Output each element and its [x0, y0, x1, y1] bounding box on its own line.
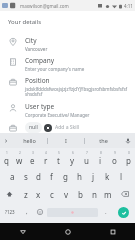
- staticText: v: [64, 189, 69, 200]
- button[interactable]: null: [0, 122, 135, 133]
- button[interactable]: g: [58, 167, 72, 185]
- staticText: e: [30, 155, 35, 166]
- button[interactable]: Voice input: [121, 133, 135, 148]
- staticText: 1: [6, 151, 8, 155]
- staticText: d: [36, 171, 41, 182]
- button[interactable]: d: [32, 167, 45, 185]
- staticText: y: [70, 155, 75, 166]
- staticText: 0: [128, 151, 130, 155]
- staticText: hello: [23, 137, 36, 144]
- button[interactable]: ?123: [0, 203, 20, 221]
- staticText: p: [126, 155, 131, 166]
- button[interactable]: x: [32, 185, 45, 203]
- staticText: Corporate Executive/ Manager: [25, 112, 90, 118]
- button[interactable]: h: [72, 167, 86, 185]
- button[interactable]: 5: [52, 150, 65, 167]
- staticText: 4: [45, 151, 47, 155]
- staticText: maxwilson@gmail.com: [20, 3, 69, 9]
- staticText: m: [104, 189, 112, 200]
- staticText: I: [65, 137, 67, 144]
- staticText: 2: [19, 151, 21, 155]
- staticText: Position: [25, 76, 50, 85]
- staticText: l: [120, 171, 123, 182]
- staticText: 8: [100, 151, 102, 155]
- button[interactable]: j: [86, 167, 100, 185]
- button[interactable]: c: [45, 185, 59, 203]
- staticText: a: [10, 171, 15, 182]
- button[interactable]: Space: [47, 208, 98, 217]
- button[interactable]: k: [100, 167, 114, 185]
- button[interactable]: I: [48, 133, 84, 148]
- button[interactable]: Enter: [118, 207, 129, 218]
- staticText: Company: [25, 56, 55, 65]
- staticText: u: [84, 155, 89, 166]
- button[interactable]: v: [59, 185, 73, 203]
- staticText: q: [4, 155, 9, 166]
- button[interactable]: a: [6, 167, 19, 185]
- staticText: t: [57, 155, 60, 166]
- staticText: 6: [72, 151, 74, 155]
- button[interactable]: s: [19, 167, 32, 185]
- button[interactable]: 6: [65, 150, 79, 167]
- button[interactable]: Recents: [90, 223, 135, 240]
- button[interactable]: 9: [107, 150, 121, 167]
- button[interactable]: Remove skill: [44, 124, 52, 132]
- button[interactable]: m: [101, 185, 115, 203]
- button[interactable]: 4: [39, 150, 52, 167]
- button[interactable]: 2: [13, 150, 26, 167]
- button[interactable]: hello: [12, 133, 47, 148]
- staticText: Enter your company's name: [25, 66, 85, 72]
- button[interactable]: Back: [0, 223, 45, 240]
- button[interactable]: 1: [0, 150, 13, 167]
- button[interactable]: 0: [121, 150, 135, 167]
- staticText: n: [92, 189, 97, 200]
- staticText: w: [16, 155, 23, 166]
- staticText: ,: [26, 208, 28, 216]
- button[interactable]: City: [0, 34, 135, 54]
- staticText: z: [24, 189, 28, 200]
- staticText: 7: [86, 151, 88, 155]
- button[interactable]: Backspace: [115, 185, 135, 203]
- staticText: Your details: [8, 18, 42, 26]
- staticText: 9: [114, 151, 116, 155]
- staticText: b: [78, 189, 83, 200]
- button[interactable]: Comma: [20, 203, 33, 221]
- button[interactable]: User type: [0, 100, 135, 120]
- staticText: g: [63, 171, 68, 182]
- button[interactable]: More suggestions: [0, 133, 12, 148]
- staticText: h: [77, 171, 82, 182]
- button[interactable]: Position: [0, 74, 135, 100]
- staticText: .: [105, 208, 107, 216]
- button[interactable]: l: [114, 167, 128, 185]
- staticText: 5: [58, 151, 60, 155]
- staticText: j: [92, 171, 95, 182]
- button[interactable]: Home: [45, 223, 90, 240]
- staticText: null: [29, 124, 38, 131]
- staticText: ?123: [5, 209, 15, 215]
- staticText: c: [50, 189, 54, 200]
- button[interactable]: n: [87, 185, 101, 203]
- button[interactable]: 3: [26, 150, 39, 167]
- staticText: x: [36, 189, 41, 200]
- button[interactable]: z: [19, 185, 32, 203]
- staticText: k: [105, 171, 110, 182]
- button[interactable]: Emoji: [33, 203, 46, 221]
- staticText: the: [99, 137, 108, 144]
- staticText: jsdsklfdddsfwosjsjzjzYzjdYjYbsgjsrofsbmf…: [25, 86, 129, 98]
- staticText: o: [112, 155, 117, 166]
- button[interactable]: Period: [99, 203, 112, 221]
- button[interactable]: the: [85, 133, 121, 148]
- button[interactable]: b: [73, 185, 87, 203]
- staticText: f: [50, 171, 53, 182]
- button[interactable]: 7: [79, 150, 93, 167]
- button[interactable]: null: [25, 122, 42, 133]
- button[interactable]: 8: [93, 150, 107, 167]
- staticText: s: [24, 171, 28, 182]
- staticText: 4:11: [124, 3, 133, 9]
- staticText: r: [44, 155, 48, 166]
- staticText: City: [25, 36, 37, 45]
- button[interactable]: f: [45, 167, 58, 185]
- button[interactable]: Shift: [0, 185, 19, 203]
- button[interactable]: Company: [0, 54, 135, 74]
- staticText: Add a Skill: [55, 124, 80, 131]
